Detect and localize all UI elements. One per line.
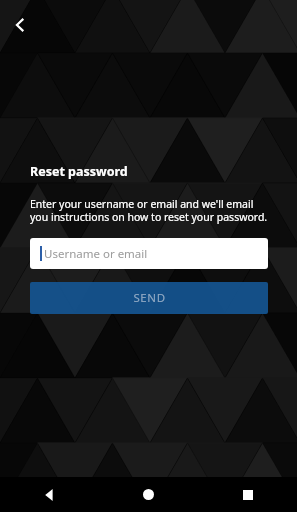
button[interactable]: SEND: [30, 282, 268, 314]
button[interactable]: Recent apps: [198, 477, 297, 512]
button[interactable]: Username or email: [30, 238, 268, 269]
button[interactable]: Home: [99, 477, 198, 512]
staticText: Username or email: [44, 246, 148, 262]
button[interactable]: Back: [6, 11, 34, 39]
staticText: Enter your username or email and we'll e…: [30, 197, 268, 224]
staticText: SEND: [133, 290, 166, 306]
button[interactable]: Back: [0, 477, 99, 512]
staticText: Reset password: [30, 163, 128, 180]
